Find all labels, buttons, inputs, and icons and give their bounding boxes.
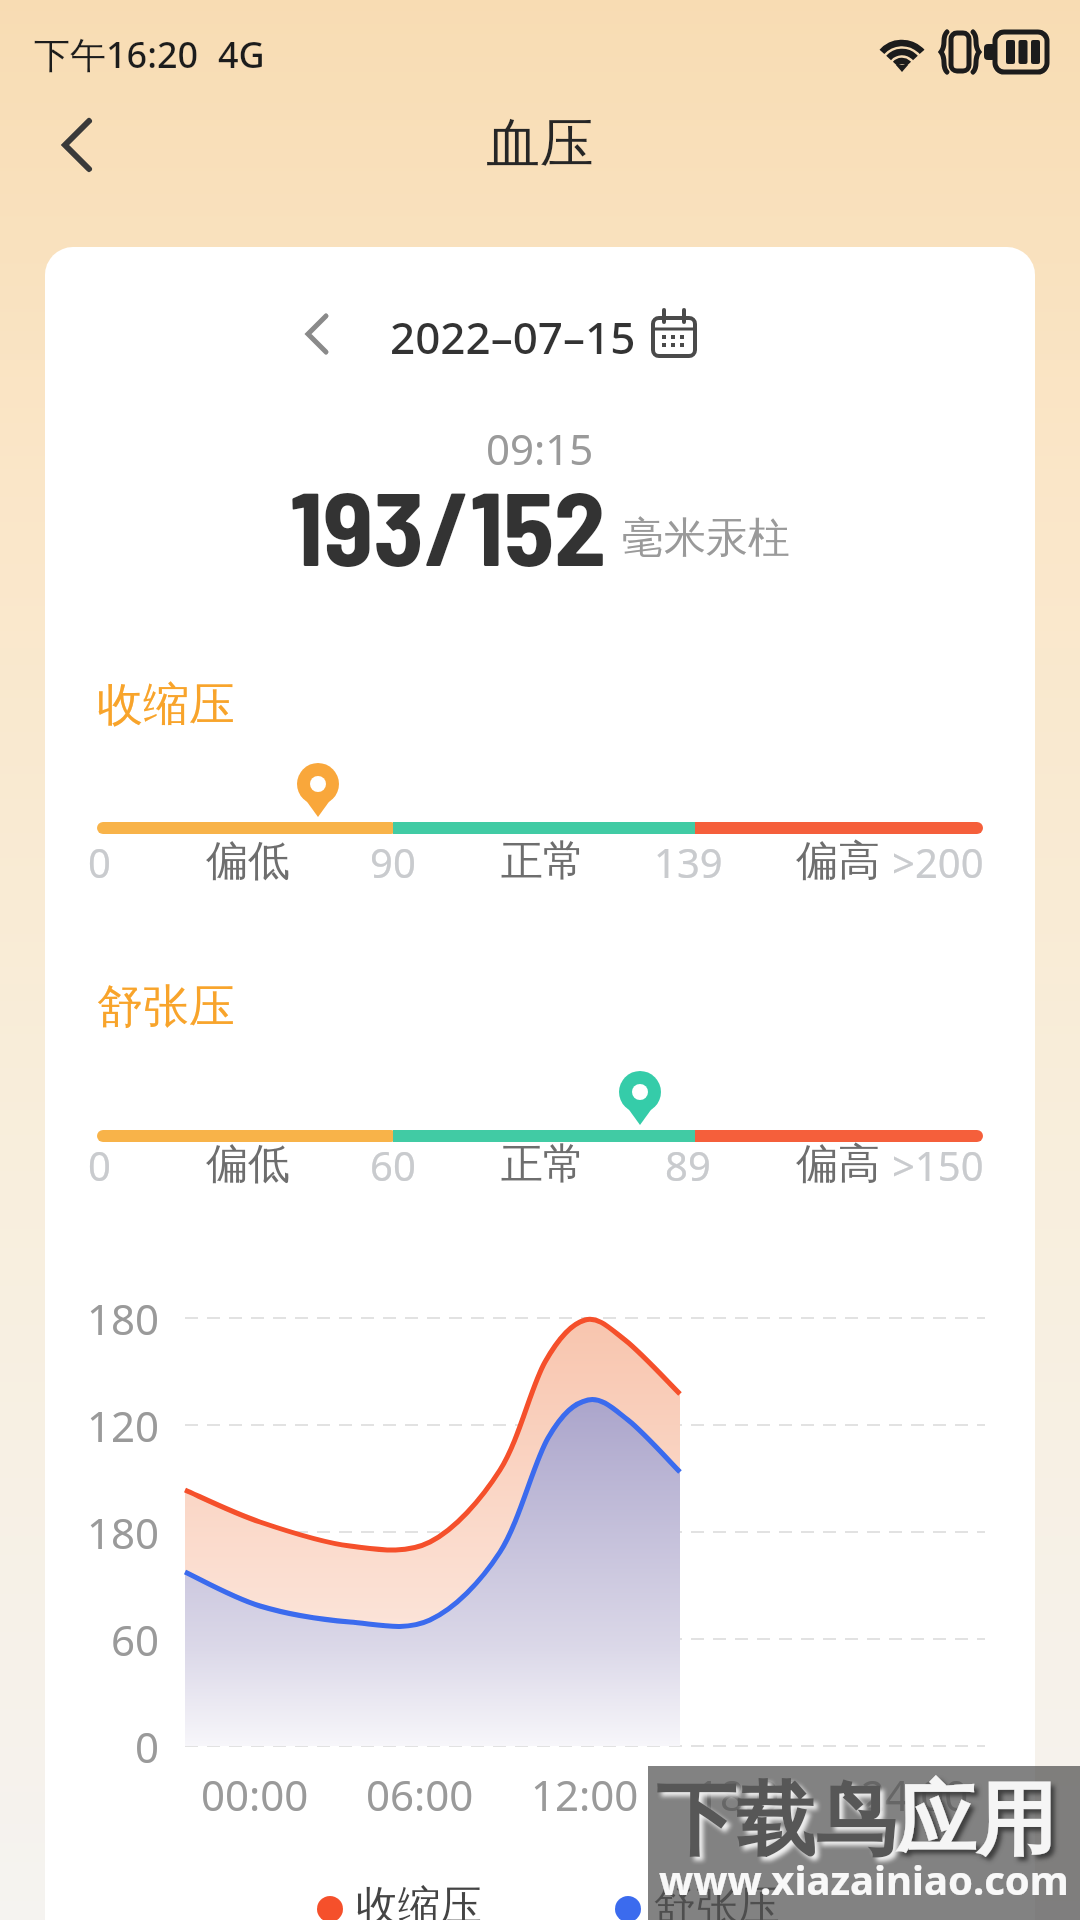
staticText: 00:00 (201, 1766, 309, 1823)
staticText: 120 (87, 1397, 160, 1454)
staticText: 偏低 (206, 1138, 290, 1191)
staticText: 下载鸟 (656, 1770, 896, 1871)
staticText: 24:00 (861, 1766, 969, 1823)
staticText: 89 (665, 1138, 711, 1192)
staticText: 0 (135, 1718, 160, 1775)
staticText: 下午16:20 (34, 30, 199, 79)
staticText: 60 (111, 1611, 160, 1668)
staticText: 180 (87, 1290, 160, 1347)
staticText: 06:00 (366, 1766, 474, 1823)
button[interactable] (44, 112, 110, 178)
staticText: 偏高 (796, 1138, 880, 1191)
staticText: 血压 (486, 110, 594, 178)
staticText: 193/152 (290, 462, 606, 587)
staticText: 应用 (896, 1770, 1056, 1871)
staticText: 0 (88, 1138, 111, 1192)
staticText: 0 (88, 835, 111, 889)
staticText: 正常 (501, 835, 585, 888)
button[interactable] (648, 308, 700, 360)
staticText: 4G (218, 30, 265, 79)
button[interactable] (292, 304, 342, 364)
staticText: 90 (370, 835, 416, 889)
staticText: www.xiazainiao.com (659, 1852, 1069, 1906)
staticText: 收缩压 (97, 676, 235, 734)
button[interactable]: 2022–07–15 (390, 307, 636, 367)
staticText: 收缩压 (356, 1880, 482, 1920)
staticText: 舒张压 (97, 978, 235, 1036)
staticText: 139 (654, 835, 723, 889)
staticText: >150 (892, 1138, 984, 1192)
staticText: 偏高 (796, 835, 880, 888)
staticText: 舒张压 (654, 1880, 780, 1920)
staticText: 60 (370, 1138, 416, 1192)
staticText: 09:15 (486, 420, 594, 477)
staticText: 偏低 (206, 835, 290, 888)
staticText: 毫米汞柱 (622, 512, 790, 565)
staticText: 12:00 (531, 1766, 639, 1823)
staticText: 180 (87, 1504, 160, 1561)
staticText: 正常 (501, 1138, 585, 1191)
staticText: 18:00 (696, 1766, 804, 1823)
staticText: >200 (892, 835, 984, 889)
staticText: 2022–07–15 (390, 307, 636, 367)
